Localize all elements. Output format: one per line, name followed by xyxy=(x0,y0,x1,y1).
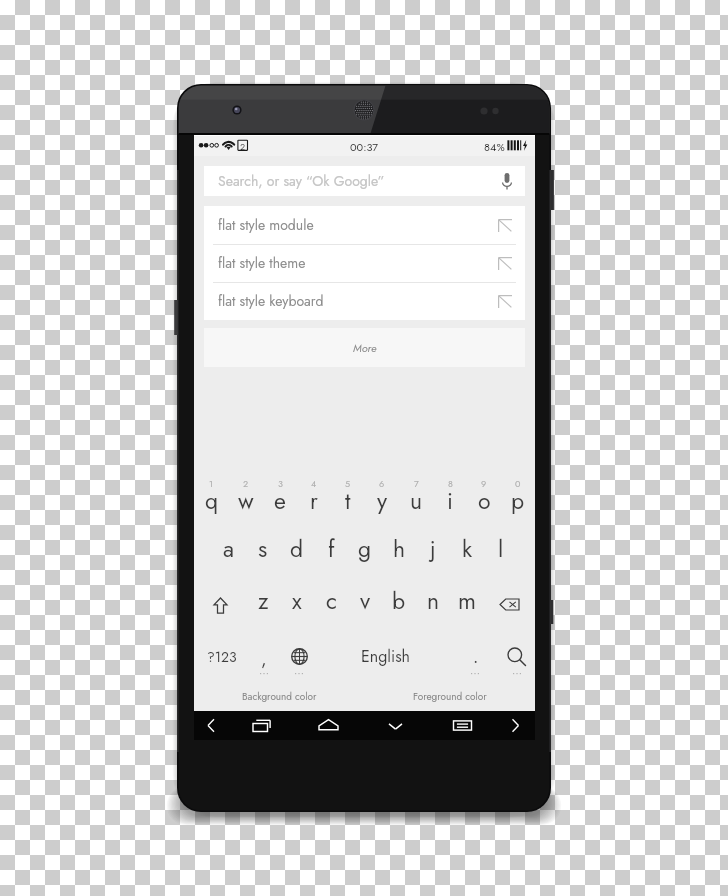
button[interactable]: Change language xyxy=(279,629,320,680)
staticText: g xyxy=(358,532,372,565)
button[interactable]: , xyxy=(249,629,279,680)
staticText: l xyxy=(498,532,504,565)
staticText: 84% xyxy=(484,139,505,155)
button[interactable]: Shift xyxy=(194,577,246,629)
staticText: 2 xyxy=(240,140,246,153)
staticText: n xyxy=(427,584,440,617)
button[interactable]: Search xyxy=(499,629,535,680)
staticText: k xyxy=(462,532,473,565)
staticText: w xyxy=(238,484,254,517)
button[interactable]: 4 xyxy=(297,473,331,525)
button[interactable]: 9 xyxy=(467,473,501,525)
button[interactable]: k xyxy=(450,525,484,577)
button[interactable]: c xyxy=(314,577,348,629)
other: Voice search xyxy=(501,172,513,191)
staticText: y xyxy=(377,484,388,517)
button[interactable]: 8 xyxy=(433,473,467,525)
staticText: 00:37 xyxy=(350,139,379,155)
staticText: . xyxy=(473,644,479,670)
button[interactable]: d xyxy=(280,525,314,577)
staticText: r xyxy=(310,484,318,517)
staticText: o xyxy=(478,484,491,517)
staticText: 9 xyxy=(481,477,487,490)
staticText: flat style theme xyxy=(218,253,306,273)
staticText: h xyxy=(393,532,406,565)
button[interactable]: flat style module xyxy=(204,206,525,244)
staticText: t xyxy=(345,484,351,517)
button[interactable]: More xyxy=(204,328,525,367)
staticText: 2 xyxy=(243,477,249,490)
staticText: j xyxy=(430,532,436,565)
button[interactable]: Foreground color xyxy=(364,680,535,711)
button[interactable]: 0 xyxy=(501,473,535,525)
staticText: , xyxy=(261,646,267,672)
button[interactable]: s xyxy=(246,525,280,577)
staticText: 7 xyxy=(414,477,419,490)
button[interactable]: f xyxy=(314,525,348,577)
staticText: m xyxy=(458,584,476,617)
button[interactable]: h xyxy=(382,525,416,577)
button[interactable]: Search, or say “Ok Google” xyxy=(204,166,525,196)
button[interactable]: 2 xyxy=(229,473,263,525)
button[interactable]: 5 xyxy=(331,473,365,525)
button[interactable]: b xyxy=(382,577,416,629)
button[interactable]: j xyxy=(416,525,450,577)
staticText: c xyxy=(326,584,337,617)
staticText: 6 xyxy=(379,477,385,490)
button[interactable]: x xyxy=(280,577,314,629)
staticText: More xyxy=(353,340,377,356)
button[interactable]: ?123 xyxy=(194,629,249,680)
button[interactable]: English xyxy=(320,629,452,680)
button[interactable]: 3 xyxy=(263,473,297,525)
button[interactable]: l xyxy=(484,525,518,577)
staticText: e xyxy=(274,484,286,517)
button[interactable]: 7 xyxy=(399,473,433,525)
staticText: Foreground color xyxy=(413,689,487,703)
staticText: b xyxy=(392,584,406,617)
button[interactable]: Hide keyboard xyxy=(362,711,429,740)
button[interactable]: flat style keyboard xyxy=(204,282,525,320)
staticText: s xyxy=(258,532,268,565)
staticText: flat style keyboard xyxy=(218,291,324,311)
staticText: z xyxy=(258,584,269,617)
staticText: a xyxy=(223,532,235,565)
staticText: x xyxy=(292,584,302,617)
staticText: English xyxy=(361,645,411,668)
button[interactable]: flat style theme xyxy=(204,244,525,282)
button[interactable]: Background color xyxy=(194,680,364,711)
button[interactable]: . xyxy=(452,629,499,680)
staticText: u xyxy=(410,484,423,517)
staticText: q xyxy=(205,484,219,517)
staticText: 8 xyxy=(448,477,453,490)
staticText: 3 xyxy=(278,477,283,490)
button[interactable]: z xyxy=(246,577,280,629)
button[interactable]: g xyxy=(348,525,382,577)
staticText: Background color xyxy=(242,689,317,703)
staticText: 0 xyxy=(515,477,521,490)
staticText: p xyxy=(511,484,525,517)
button[interactable]: Next xyxy=(496,711,535,740)
button[interactable]: Recent apps xyxy=(228,711,295,740)
staticText: Search, or say “Ok Google” xyxy=(218,171,385,191)
button[interactable]: m xyxy=(450,577,484,629)
staticText: 4 xyxy=(311,477,317,490)
button[interactable]: n xyxy=(416,577,450,629)
staticText: f xyxy=(328,532,335,565)
staticText: i xyxy=(447,484,453,517)
staticText: 5 xyxy=(345,477,351,490)
button[interactable]: 1 xyxy=(194,473,229,525)
staticText: ?123 xyxy=(207,647,237,667)
button[interactable]: Switch keyboard xyxy=(429,711,496,740)
staticText: d xyxy=(290,532,304,565)
button[interactable]: 6 xyxy=(365,473,399,525)
staticText: flat style module xyxy=(218,215,314,235)
staticText: 1 xyxy=(209,477,214,490)
button[interactable]: Backspace xyxy=(484,577,535,629)
staticText: v xyxy=(360,584,371,617)
button[interactable]: Home xyxy=(295,711,362,740)
button[interactable]: Previous xyxy=(194,711,228,740)
button[interactable]: a xyxy=(212,525,246,577)
button[interactable]: v xyxy=(348,577,382,629)
